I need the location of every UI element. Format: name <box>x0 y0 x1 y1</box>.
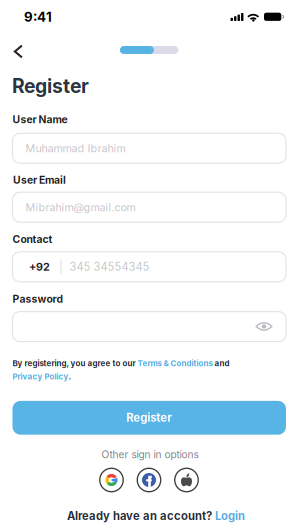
button[interactable]: Register <box>12 401 286 435</box>
staticText: Password <box>12 293 63 305</box>
button[interactable]: Sign in with Facebook <box>137 468 161 492</box>
staticText: 345 34554345 <box>69 260 149 273</box>
staticText: Already have an account? <box>67 509 215 523</box>
button[interactable]: Sign in with Google <box>100 468 123 492</box>
staticText: Register <box>126 411 172 425</box>
staticText: User Name <box>12 113 67 126</box>
staticText: Other sign in options <box>101 448 198 461</box>
button[interactable]: Login <box>215 509 245 523</box>
button[interactable]: Show password <box>252 316 276 336</box>
staticText: and <box>212 359 229 368</box>
staticText: Register <box>12 74 89 98</box>
button[interactable]: Sign in with Apple <box>175 468 198 492</box>
staticText: +92 <box>29 260 50 273</box>
staticText: Terms & Conditions <box>137 359 212 368</box>
staticText: Login <box>215 509 245 523</box>
staticText: Privacy Policy <box>12 372 68 381</box>
button[interactable]: Back <box>5 39 31 63</box>
staticText: 9:41 <box>24 9 52 25</box>
button[interactable]: Privacy Policy <box>12 372 68 381</box>
staticText: . <box>68 372 71 381</box>
staticText: By registering, you agree to our <box>12 359 137 368</box>
button[interactable]: Terms & Conditions <box>137 359 212 368</box>
staticText: User Email <box>13 174 66 186</box>
staticText: Muhammad Ibrahim <box>25 142 125 155</box>
staticText: Contact <box>12 233 52 246</box>
staticText: Mibrahim@gmail.com <box>25 201 135 214</box>
